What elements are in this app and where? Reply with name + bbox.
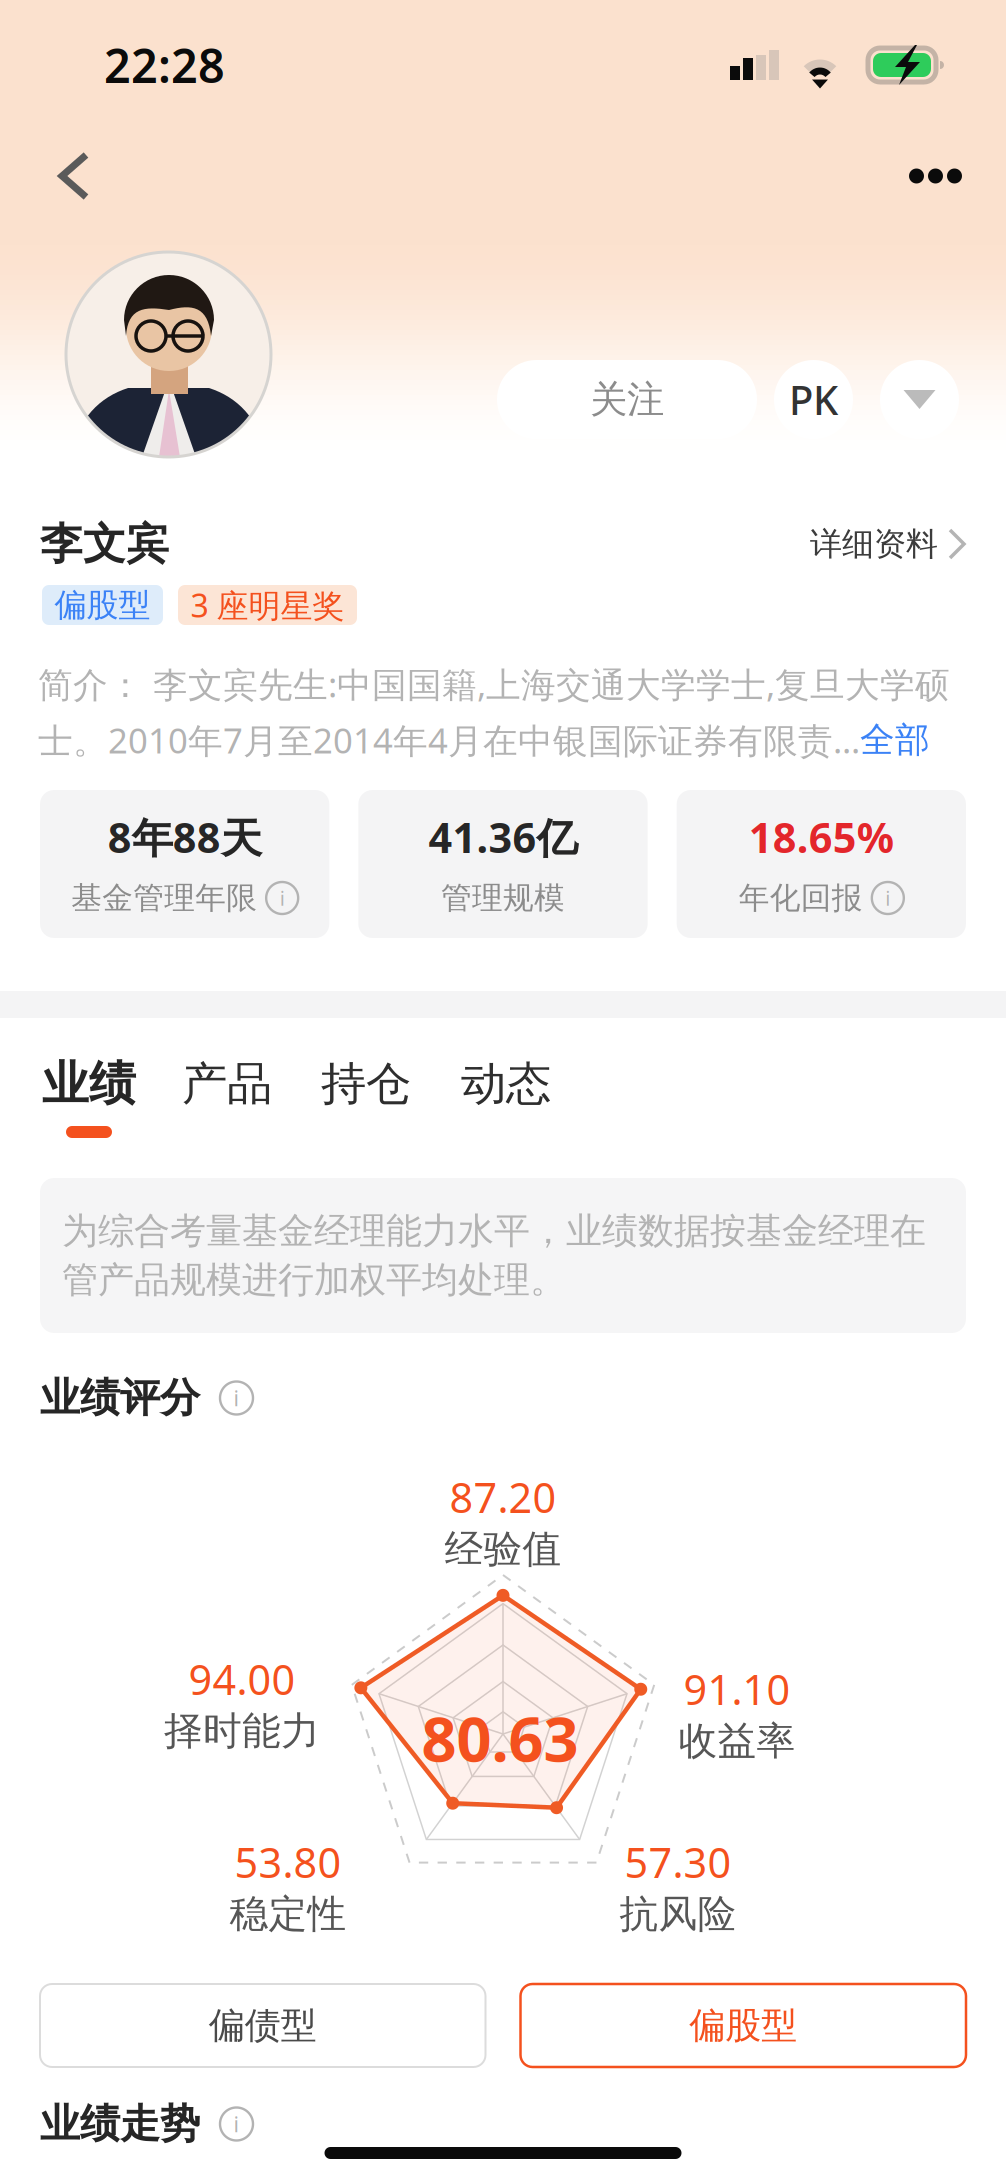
staticText: 业绩 xyxy=(42,1055,136,1113)
staticText: 偏股型 xyxy=(689,2003,797,2048)
staticText: 产品 xyxy=(182,1056,272,1112)
button[interactable]: 动态 xyxy=(461,1056,551,1112)
staticText: 94.00 xyxy=(188,1652,295,1706)
staticText: 全部 xyxy=(860,719,930,761)
staticText: i xyxy=(280,885,285,911)
staticText: 管理规模 xyxy=(441,879,565,917)
staticText: 80.63 xyxy=(421,1697,578,1779)
staticText: 持仓 xyxy=(321,1056,411,1112)
staticText: 稳定性 xyxy=(229,1890,346,1938)
staticText: 8年88天 xyxy=(108,810,262,864)
staticText: 择时能力 xyxy=(164,1707,320,1755)
staticText: 91.10 xyxy=(683,1662,790,1716)
button[interactable]: 详细资料 xyxy=(810,524,966,564)
staticText: i xyxy=(233,2110,239,2138)
staticText: 李文宾 xyxy=(40,518,169,570)
button[interactable]: PK xyxy=(774,360,853,439)
button[interactable]: More options xyxy=(883,138,988,213)
staticText: i xyxy=(233,1384,239,1412)
staticText: 基金管理年限 xyxy=(71,879,257,917)
button[interactable]: 产品 xyxy=(182,1056,272,1112)
staticText: 年化回报 xyxy=(739,879,863,917)
staticText: 18.65% xyxy=(749,810,894,864)
staticText: 业绩走势 xyxy=(40,2099,200,2148)
button[interactable]: 偏股型 xyxy=(520,1984,966,2067)
button[interactable]: 业绩 xyxy=(42,1056,136,1138)
staticText: 偏债型 xyxy=(209,2003,317,2048)
staticText: 动态 xyxy=(461,1056,551,1112)
staticText: 41.36亿 xyxy=(428,810,577,864)
staticText: 收益率 xyxy=(678,1717,795,1765)
staticText: 关注 xyxy=(590,377,664,422)
staticText: 业绩评分 xyxy=(40,1373,200,1422)
staticText: 经验值 xyxy=(444,1525,561,1573)
staticText: 详细资料 xyxy=(810,524,938,564)
staticText: 57.30 xyxy=(624,1835,731,1889)
staticText: 3 座明星奖 xyxy=(190,584,344,626)
staticText: 偏股型 xyxy=(54,585,150,625)
button[interactable]: Back xyxy=(32,129,116,223)
staticText: 管产品规模进行加权平均处理。 xyxy=(62,1258,566,1302)
button[interactable]: More actions xyxy=(880,360,959,439)
staticText: 简介： 李文宾先生:中国国籍,上海交通大学学士,复旦大学硕 xyxy=(38,661,950,707)
staticText: 士。2010年7月至2014年4月在中银国际证券有限责... xyxy=(38,717,860,763)
staticText: i xyxy=(885,885,890,911)
button[interactable]: 持仓 xyxy=(321,1056,411,1112)
staticText: 抗风险 xyxy=(619,1890,736,1938)
staticText: 为综合考量基金经理能力水平，业绩数据按基金经理在 xyxy=(62,1209,926,1253)
button[interactable]: 关注 xyxy=(497,360,757,439)
staticText: 87.20 xyxy=(449,1470,556,1524)
staticText: PK xyxy=(789,373,838,426)
button[interactable]: 偏债型 xyxy=(40,1984,485,2067)
staticText: 22:28 xyxy=(104,34,225,96)
staticText: 53.80 xyxy=(234,1835,341,1889)
